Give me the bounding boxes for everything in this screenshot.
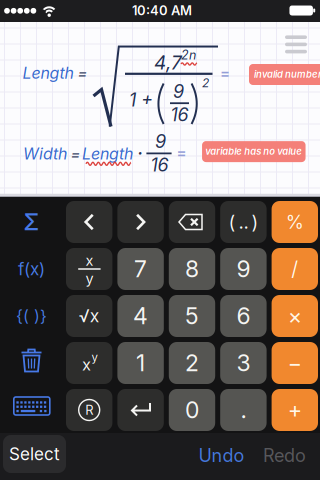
staticText: {( )} bbox=[16, 306, 47, 326]
staticText: 2 bbox=[202, 76, 209, 90]
staticText: 0 bbox=[185, 396, 199, 424]
button[interactable] bbox=[3, 340, 59, 382]
staticText: Length bbox=[82, 144, 133, 163]
staticText: ( .. ) bbox=[228, 211, 258, 233]
staticText: = bbox=[176, 144, 186, 162]
staticText: Redo bbox=[263, 445, 306, 466]
staticText: = bbox=[77, 64, 87, 82]
button[interactable]: 1 bbox=[117, 342, 164, 384]
button[interactable]: Redo bbox=[249, 438, 319, 472]
staticText: Width bbox=[23, 144, 67, 163]
button[interactable]: ( .. ) bbox=[220, 201, 267, 243]
staticText: % bbox=[286, 211, 304, 233]
button[interactable]: − bbox=[272, 342, 318, 384]
button[interactable]: {( )} bbox=[3, 295, 59, 337]
staticText: × bbox=[288, 303, 302, 329]
button[interactable]: Select bbox=[3, 435, 66, 473]
button[interactable] bbox=[281, 31, 311, 57]
staticText: 5 bbox=[185, 302, 199, 330]
button[interactable]: 8 bbox=[169, 248, 215, 290]
button[interactable]: 7 bbox=[117, 248, 164, 290]
button[interactable]: √x bbox=[66, 295, 112, 337]
button[interactable]: 9 bbox=[220, 248, 267, 290]
staticText: 16 bbox=[170, 104, 188, 126]
button[interactable]: × bbox=[272, 295, 318, 337]
button[interactable]: + bbox=[272, 389, 318, 431]
staticText: 16 bbox=[150, 154, 168, 176]
staticText: 9 bbox=[236, 255, 250, 283]
staticText: Σ bbox=[23, 208, 39, 236]
button[interactable]: R bbox=[66, 389, 112, 431]
button[interactable]: x bbox=[66, 342, 112, 384]
staticText: x bbox=[85, 252, 93, 269]
staticText: y bbox=[85, 270, 93, 287]
button[interactable]: 3 bbox=[220, 342, 267, 384]
button[interactable] bbox=[169, 201, 215, 243]
button[interactable]: 5 bbox=[169, 295, 215, 337]
staticText: 3 bbox=[236, 349, 250, 377]
button[interactable]: f(x) bbox=[3, 248, 59, 290]
staticText: y bbox=[91, 350, 97, 364]
button[interactable]: 6 bbox=[220, 295, 267, 337]
staticText: invalid number form bbox=[254, 68, 320, 80]
button[interactable]: 4 bbox=[117, 295, 164, 337]
staticText: Undo bbox=[198, 445, 244, 466]
button[interactable] bbox=[66, 201, 112, 243]
staticText: 2n bbox=[181, 47, 196, 62]
button[interactable]: 0 bbox=[169, 389, 215, 431]
button[interactable] bbox=[4, 385, 60, 427]
staticText: 10:40 AM bbox=[132, 3, 192, 18]
button[interactable] bbox=[117, 389, 164, 431]
button[interactable]: x bbox=[66, 248, 112, 290]
staticText: R bbox=[85, 402, 93, 418]
button[interactable]: . bbox=[220, 389, 267, 431]
staticText: = bbox=[220, 64, 230, 82]
button[interactable]: % bbox=[272, 201, 318, 243]
staticText: / bbox=[291, 257, 298, 280]
staticText: variable has no value bbox=[205, 146, 302, 157]
button[interactable]: / bbox=[272, 248, 318, 290]
staticText: 6 bbox=[236, 302, 250, 330]
staticText: . bbox=[240, 396, 246, 424]
staticText: Select bbox=[9, 444, 60, 464]
staticText: 1 bbox=[136, 349, 145, 377]
staticText: 9 bbox=[155, 131, 166, 152]
staticText: x bbox=[82, 354, 91, 374]
staticText: 2 bbox=[185, 349, 199, 377]
staticText: 8 bbox=[185, 255, 199, 283]
button[interactable] bbox=[117, 201, 164, 243]
button[interactable]: 2 bbox=[169, 342, 215, 384]
staticText: Length bbox=[22, 63, 73, 83]
staticText: √x bbox=[79, 305, 100, 327]
staticText: − bbox=[288, 350, 302, 376]
button[interactable]: Σ bbox=[3, 201, 59, 243]
staticText: + bbox=[288, 397, 302, 423]
staticText: 9 bbox=[173, 81, 184, 102]
staticText: 4,7 bbox=[154, 51, 182, 74]
staticText: 7 bbox=[134, 255, 147, 283]
staticText: · bbox=[137, 142, 142, 163]
staticText: f(x) bbox=[18, 259, 45, 279]
staticText: = bbox=[70, 145, 80, 163]
staticText: 1 + bbox=[129, 89, 153, 111]
staticText: 4 bbox=[133, 302, 148, 330]
button[interactable]: Undo bbox=[186, 438, 256, 472]
